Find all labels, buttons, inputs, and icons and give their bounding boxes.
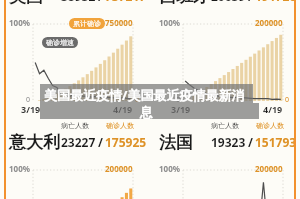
button[interactable]: 确诊增速: [46, 38, 74, 47]
staticText: 200000: [255, 17, 283, 28]
staticText: 191726: [255, 0, 297, 4]
staticText: /: [98, 134, 103, 150]
staticText: 病亡人数: [211, 121, 239, 130]
staticText: 累计确诊: [73, 19, 101, 28]
staticText: 737217: [105, 0, 147, 4]
staticText: 200000: [105, 163, 133, 174]
staticText: 4/19: [113, 103, 133, 115]
staticText: 175925: [105, 134, 147, 150]
staticText: 3/19: [171, 103, 191, 115]
staticText: 0: [26, 95, 31, 105]
staticText: 100%: [9, 163, 30, 174]
staticText: 西班牙: [159, 0, 210, 7]
staticText: 19323: [211, 134, 246, 150]
staticText: 20639: [211, 0, 246, 4]
staticText: 100%: [159, 17, 180, 28]
staticText: 38932: [61, 0, 96, 4]
staticText: 息: [140, 104, 153, 120]
staticText: /: [248, 134, 253, 150]
staticText: 100%: [159, 163, 180, 174]
staticText: 4/19: [263, 103, 283, 115]
staticText: 0: [176, 95, 181, 105]
staticText: 确诊增速: [46, 38, 74, 47]
button[interactable]: 累计确诊: [73, 19, 101, 28]
button[interactable]: 病亡人数: [150, 0, 300, 118]
staticText: 151793: [255, 134, 297, 150]
staticText: /: [98, 0, 103, 4]
button[interactable]: 病亡人数: [0, 0, 150, 118]
staticText: 750000: [105, 17, 133, 28]
staticText: 3/19: [21, 103, 41, 115]
staticText: 意大利: [9, 132, 60, 153]
staticText: 0: [135, 95, 140, 105]
staticText: 病亡人数: [61, 121, 89, 130]
staticText: /: [248, 0, 253, 4]
staticText: 23227: [61, 134, 96, 150]
staticText: 美国: [9, 0, 43, 7]
button[interactable]: 病亡人数: [150, 118, 300, 199]
staticText: 法国: [159, 132, 193, 153]
staticText: 0: [285, 95, 290, 105]
staticText: 200000: [255, 163, 283, 174]
staticText: 确诊人数: [106, 121, 134, 130]
button[interactable]: 病亡人数: [0, 118, 150, 199]
staticText: 100%: [9, 17, 30, 28]
staticText: 美国最近疫情/美国最近疫情最新消: [44, 86, 245, 104]
staticText: 确诊人数: [256, 121, 284, 130]
